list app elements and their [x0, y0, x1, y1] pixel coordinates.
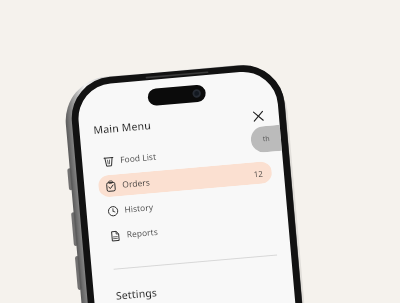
staticText: Food List: [120, 151, 156, 166]
staticText: Main Menu: [93, 118, 152, 137]
button[interactable]: History: [100, 186, 275, 223]
staticText: 12: [252, 167, 263, 179]
staticText: Orders: [122, 176, 151, 191]
button[interactable]: Reports: [102, 211, 277, 248]
staticText: th: [262, 134, 270, 144]
staticText: Reports: [126, 226, 159, 240]
button[interactable]: Close menu: [248, 106, 268, 125]
staticText: History: [124, 201, 154, 216]
button[interactable]: Settings: [107, 271, 282, 303]
button[interactable]: Food List: [95, 136, 271, 173]
button[interactable]: Orders: [97, 161, 273, 198]
staticText: Settings: [115, 285, 157, 303]
